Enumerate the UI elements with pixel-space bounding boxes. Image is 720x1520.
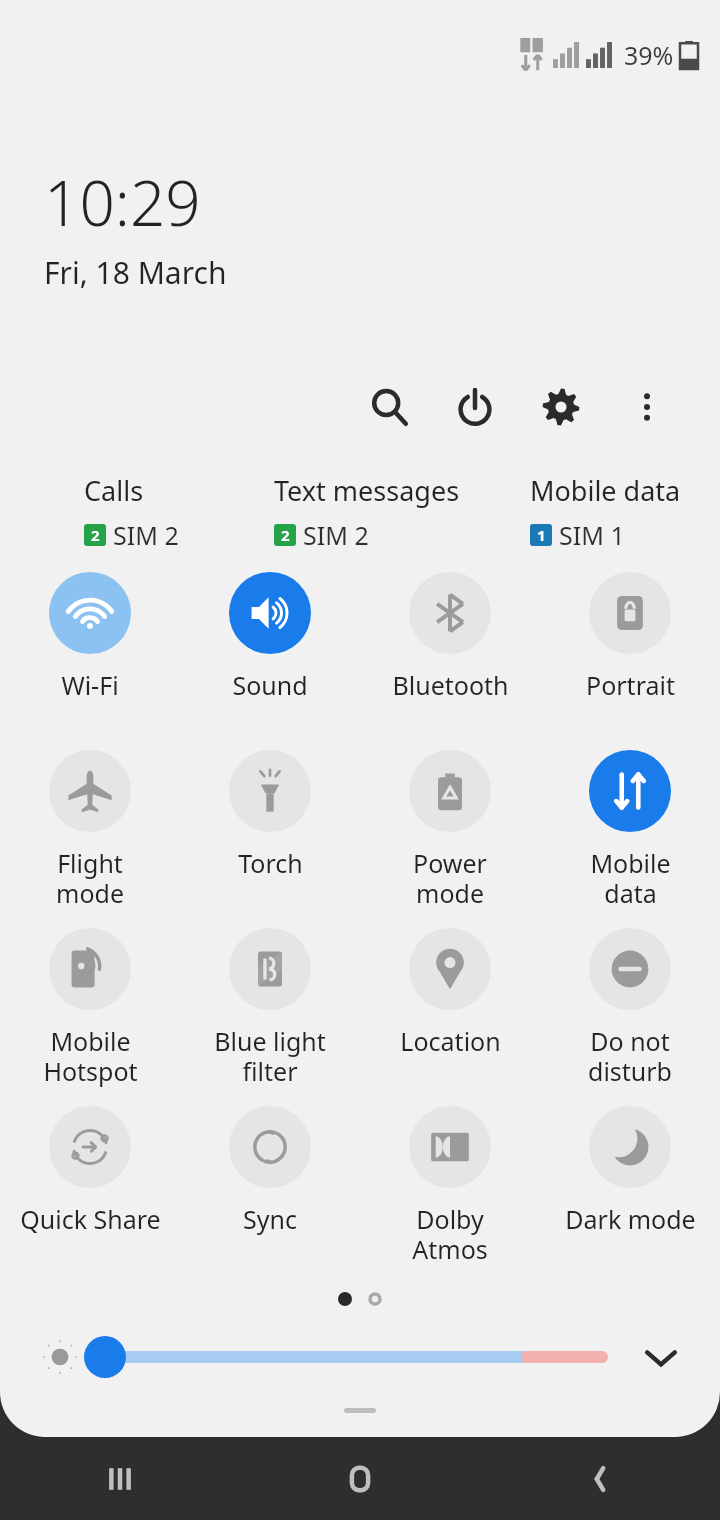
button[interactable]: Auto brightness xyxy=(38,1335,82,1379)
staticText: 2 xyxy=(281,525,290,545)
button[interactable]: Flight mode xyxy=(0,746,180,911)
staticText: Wi-Fi xyxy=(61,668,119,702)
staticText: SIM 2 xyxy=(303,518,369,552)
button[interactable]: Brightness xyxy=(84,1335,602,1379)
button[interactable]: Dark mode xyxy=(540,1102,720,1236)
button[interactable]: Sync xyxy=(180,1102,360,1236)
button[interactable]: Location xyxy=(360,924,540,1058)
staticText: Torch xyxy=(238,846,303,880)
button[interactable]: Power off xyxy=(446,378,504,436)
button[interactable]: Expand xyxy=(638,1334,684,1380)
staticText: Dark mode xyxy=(565,1202,696,1236)
staticText: 10:29 xyxy=(44,160,201,244)
staticText: Dolby Atmos xyxy=(412,1202,488,1267)
button[interactable]: Home xyxy=(240,1437,480,1520)
button[interactable]: Search xyxy=(360,378,418,436)
staticText: Sound xyxy=(232,668,308,702)
button[interactable]: Settings xyxy=(532,378,590,436)
button[interactable]: Mobile data xyxy=(540,746,720,911)
button[interactable]: More options xyxy=(618,378,676,436)
staticText: Sync xyxy=(243,1202,297,1236)
staticText: Power mode xyxy=(413,846,487,911)
button[interactable]: Dolby Atmos xyxy=(360,1102,540,1267)
staticText: Mobile Hotspot xyxy=(43,1024,138,1089)
button[interactable]: Sound xyxy=(180,568,360,702)
staticText: Fri, 18 March xyxy=(44,252,227,293)
staticText: 1 xyxy=(537,525,546,545)
staticText: Flight mode xyxy=(56,846,124,911)
staticText: Quick Share xyxy=(20,1202,161,1236)
staticText: Blue light filter xyxy=(214,1024,326,1089)
staticText: Calls xyxy=(84,472,144,509)
button[interactable]: Back xyxy=(480,1437,720,1520)
button[interactable]: Calls xyxy=(84,472,274,552)
staticText: 39% xyxy=(624,38,674,72)
button[interactable]: Mobile data xyxy=(530,472,700,552)
button[interactable]: Bluetooth xyxy=(360,568,540,702)
staticText: Bluetooth xyxy=(392,668,509,702)
staticText: SIM 2 xyxy=(113,518,179,552)
button[interactable]: Recents xyxy=(0,1437,240,1520)
button[interactable]: Blue light filter xyxy=(180,924,360,1089)
staticText: 2 xyxy=(91,525,100,545)
staticText: Text messages xyxy=(274,472,460,509)
staticText: Location xyxy=(400,1024,501,1058)
button[interactable]: Torch xyxy=(180,746,360,880)
button[interactable]: Do not disturb xyxy=(540,924,720,1089)
button[interactable]: Wi-Fi xyxy=(0,568,180,702)
staticText: SIM 1 xyxy=(559,518,625,552)
staticText: Do not disturb xyxy=(588,1024,672,1089)
staticText: Mobile data xyxy=(590,846,671,911)
button[interactable]: Power mode xyxy=(360,746,540,911)
staticText: Portrait xyxy=(586,668,675,702)
staticText: Mobile data xyxy=(530,472,681,509)
button[interactable]: Quick Share xyxy=(0,1102,180,1236)
button[interactable]: Text messages xyxy=(274,472,530,552)
button[interactable]: Portrait xyxy=(540,568,720,702)
button[interactable]: Mobile Hotspot xyxy=(0,924,180,1089)
